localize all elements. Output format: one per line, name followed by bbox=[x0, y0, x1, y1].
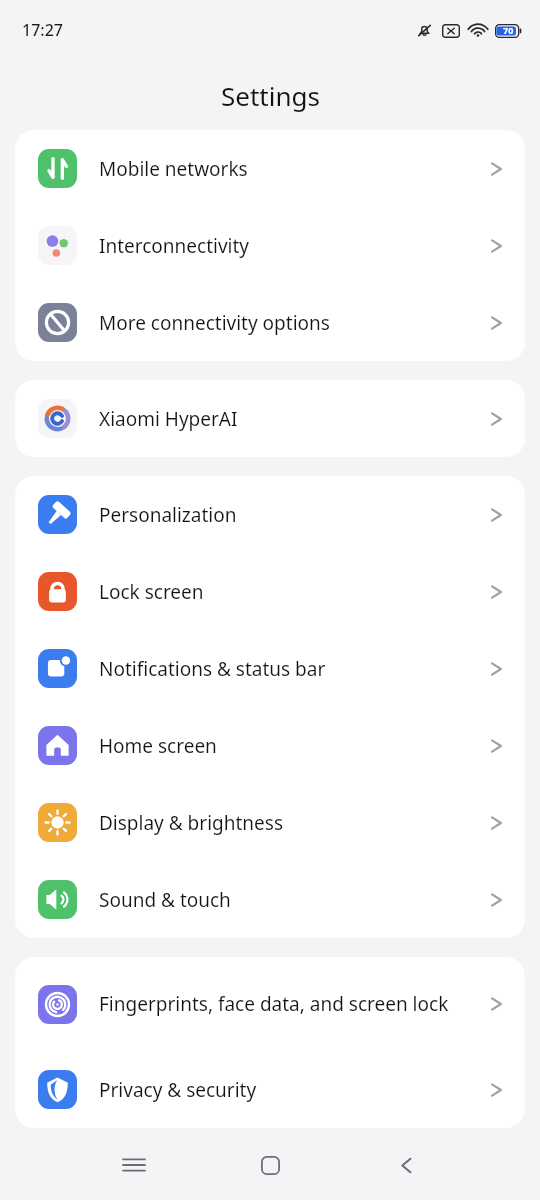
button[interactable]: Home screen bbox=[15, 707, 525, 784]
staticText: Personalization bbox=[99, 502, 480, 528]
staticText: Xiaomi HyperAI bbox=[99, 406, 480, 432]
button[interactable]: Recents bbox=[107, 1138, 161, 1192]
button[interactable]: Personalization bbox=[15, 476, 525, 553]
staticText: Fingerprints, face data, and screen lock bbox=[99, 991, 480, 1017]
button[interactable]: Notifications & status bar bbox=[15, 630, 525, 707]
button[interactable]: More connectivity options bbox=[15, 284, 525, 361]
staticText: Display & brightness bbox=[99, 810, 480, 836]
staticText: 17:27 bbox=[22, 19, 63, 41]
staticText: Settings bbox=[221, 78, 320, 113]
button[interactable]: Fingerprints, face data, and screen lock bbox=[15, 957, 525, 1051]
button[interactable]: Lock screen bbox=[15, 553, 525, 630]
button[interactable]: Mobile networks bbox=[15, 130, 525, 207]
button[interactable]: Back bbox=[379, 1138, 433, 1192]
button[interactable]: Interconnectivity bbox=[15, 207, 525, 284]
staticText: Interconnectivity bbox=[99, 233, 480, 259]
staticText: More connectivity options bbox=[99, 310, 480, 336]
staticText: Home screen bbox=[99, 733, 480, 759]
button[interactable]: Xiaomi HyperAI bbox=[15, 380, 525, 457]
button[interactable]: Display & brightness bbox=[15, 784, 525, 861]
staticText: 70 bbox=[503, 24, 514, 36]
staticText: Notifications & status bar bbox=[99, 656, 480, 682]
button[interactable]: Privacy & security bbox=[15, 1051, 525, 1128]
staticText: Sound & touch bbox=[99, 887, 480, 913]
button[interactable]: Home bbox=[243, 1138, 297, 1192]
staticText: Lock screen bbox=[99, 579, 480, 605]
staticText: Mobile networks bbox=[99, 156, 480, 182]
button[interactable]: Sound & touch bbox=[15, 861, 525, 938]
staticText: Privacy & security bbox=[99, 1077, 480, 1103]
